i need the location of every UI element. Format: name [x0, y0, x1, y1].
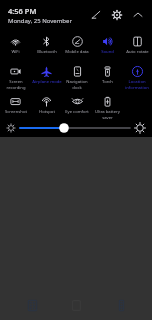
staticText: Torch — [102, 79, 113, 85]
button[interactable] — [20, 122, 130, 134]
button[interactable]: Edit — [88, 7, 104, 23]
staticText: Screenshot — [5, 109, 27, 115]
staticText: WiFi — [11, 49, 20, 55]
staticText: Monday, 25 November — [8, 17, 72, 25]
button[interactable]: Airplane mode — [31, 63, 62, 93]
staticText: Bluetooth — [37, 49, 57, 55]
button[interactable]: Location information — [122, 63, 152, 93]
staticText: Navigation dock — [66, 79, 88, 90]
button[interactable]: Recents — [19, 292, 45, 318]
button[interactable]: Bluetooth — [31, 33, 62, 63]
staticText: Airplane mode — [32, 79, 62, 85]
button[interactable]: Screen recording — [0, 63, 31, 93]
button[interactable]: Screenshot — [0, 93, 31, 120]
staticText: Ultra battery saver — [95, 109, 120, 120]
button[interactable]: Collapse — [130, 7, 146, 23]
button[interactable]: Sound — [92, 33, 122, 63]
button[interactable]: Torch — [92, 63, 122, 93]
button[interactable]: Eye comfort — [62, 93, 92, 120]
staticText: Screen recording — [6, 79, 26, 90]
staticText: Sound — [101, 49, 114, 55]
staticText: Auto rotate — [126, 49, 149, 55]
button[interactable]: WiFi — [0, 33, 31, 63]
button[interactable]: Auto rotate — [122, 33, 152, 63]
staticText: 4:56 PM — [8, 6, 37, 16]
button[interactable]: Navigation dock — [62, 63, 92, 93]
button[interactable]: Ultra battery saver — [92, 93, 122, 120]
button[interactable]: Hotspot — [31, 93, 62, 120]
button[interactable]: Settings — [109, 7, 125, 23]
staticText: Hotspot — [39, 109, 55, 115]
staticText: Mobile data — [65, 49, 89, 55]
staticText: Eye comfort — [65, 109, 89, 115]
button[interactable]: Mobile data — [62, 33, 92, 63]
staticText: Location information — [125, 79, 149, 90]
